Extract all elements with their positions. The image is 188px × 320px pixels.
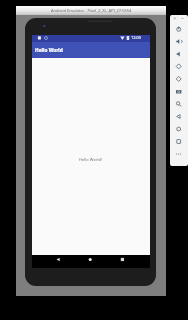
button[interactable] xyxy=(48,254,68,266)
staticText: Hello World! xyxy=(79,157,103,162)
button[interactable] xyxy=(170,23,188,35)
staticText: Android Emulator - Pixel_2_XL_API_27:555… xyxy=(51,8,132,13)
button[interactable] xyxy=(170,85,188,97)
button[interactable] xyxy=(112,254,132,266)
staticText: Hello World xyxy=(35,47,63,54)
button[interactable] xyxy=(170,98,188,110)
button[interactable] xyxy=(80,254,100,266)
staticText: 12:00 xyxy=(131,35,141,40)
button[interactable] xyxy=(170,48,188,60)
button[interactable] xyxy=(170,123,188,135)
button[interactable] xyxy=(170,35,188,47)
button[interactable] xyxy=(170,148,188,160)
button[interactable] xyxy=(170,110,188,122)
button[interactable] xyxy=(170,135,188,147)
button[interactable] xyxy=(170,60,188,72)
button[interactable]: Hello World xyxy=(32,42,150,58)
button[interactable] xyxy=(170,73,188,85)
